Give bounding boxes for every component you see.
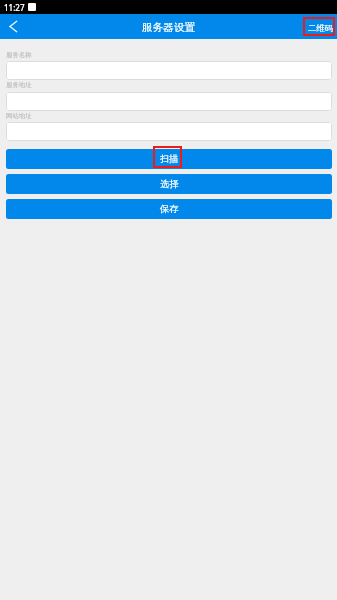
staticText: 服务名称 <box>6 51 32 59</box>
staticText: 网站地址 <box>6 112 32 120</box>
button[interactable]: 选择 <box>6 174 332 194</box>
staticText: 保存 <box>160 203 179 215</box>
button[interactable]: 扫描 <box>6 149 332 169</box>
staticText: 服务器设置 <box>142 21 195 34</box>
staticText: 服务地址 <box>6 81 32 89</box>
button[interactable]: 服务名称 <box>6 61 332 80</box>
staticText: 选择 <box>160 178 179 190</box>
staticText: 扫描 <box>160 153 179 165</box>
staticText: 11:27 <box>4 2 25 13</box>
button[interactable]: 保存 <box>6 199 332 219</box>
staticText: 二维码 <box>308 23 333 33</box>
button[interactable]: 服务地址 <box>6 92 332 111</box>
button[interactable]: Back <box>0 14 27 39</box>
button[interactable]: 二维码 <box>308 23 333 33</box>
button[interactable]: 网站地址 <box>6 122 332 141</box>
